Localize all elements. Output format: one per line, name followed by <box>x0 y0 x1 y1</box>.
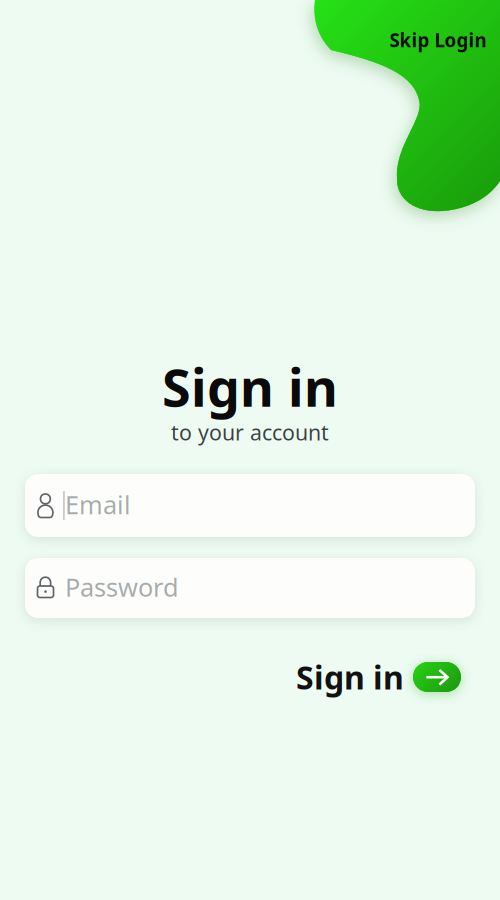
staticText: Skip Login <box>389 28 486 52</box>
button[interactable]: Skip Login <box>373 27 500 53</box>
button[interactable]: Sign in <box>296 655 452 699</box>
staticText: Email <box>65 488 131 521</box>
staticText: Password <box>65 570 179 604</box>
staticText: Sign in <box>296 656 404 698</box>
staticText: to your account <box>171 418 329 446</box>
button[interactable]: Email <box>25 474 475 537</box>
staticText: Sign in <box>162 352 338 421</box>
button[interactable]: Password <box>25 558 475 618</box>
